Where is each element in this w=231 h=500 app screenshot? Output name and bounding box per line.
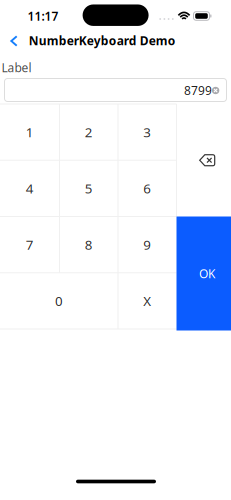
staticText: Label bbox=[1, 59, 31, 75]
button[interactable]: 3 bbox=[118, 104, 176, 160]
button[interactable]: 6 bbox=[118, 160, 176, 216]
staticText: 6 bbox=[143, 179, 151, 197]
staticText: 2 bbox=[85, 123, 93, 141]
staticText: 8 bbox=[85, 236, 93, 253]
button[interactable]: Delete bbox=[176, 104, 231, 216]
button[interactable]: Clear bbox=[212, 87, 219, 94]
button[interactable]: Text input bbox=[4, 78, 227, 102]
staticText: X bbox=[143, 292, 151, 310]
staticText: 1 bbox=[26, 123, 34, 141]
staticText: 3 bbox=[143, 123, 151, 141]
staticText: 0 bbox=[55, 292, 63, 310]
staticText: NumberKeyboard Demo bbox=[29, 32, 176, 48]
button[interactable]: 5 bbox=[60, 160, 118, 216]
staticText: 8799 bbox=[184, 82, 212, 98]
staticText: 11:17 bbox=[27, 8, 58, 24]
staticText: OK bbox=[199, 265, 215, 281]
button[interactable]: 7 bbox=[1, 217, 59, 273]
button[interactable]: 1 bbox=[1, 104, 59, 160]
button[interactable]: 4 bbox=[1, 160, 59, 216]
staticText: 7 bbox=[26, 236, 34, 253]
button[interactable]: 8 bbox=[60, 217, 118, 273]
button[interactable]: 9 bbox=[118, 217, 176, 273]
button[interactable]: X bbox=[118, 273, 176, 329]
staticText: 4 bbox=[26, 179, 34, 197]
staticText: 9 bbox=[143, 236, 151, 253]
button[interactable]: 2 bbox=[60, 104, 118, 160]
button[interactable]: OK bbox=[176, 216, 231, 330]
button[interactable]: 0 bbox=[0, 273, 117, 329]
staticText: 5 bbox=[85, 179, 93, 197]
button[interactable]: Back bbox=[5, 30, 23, 52]
